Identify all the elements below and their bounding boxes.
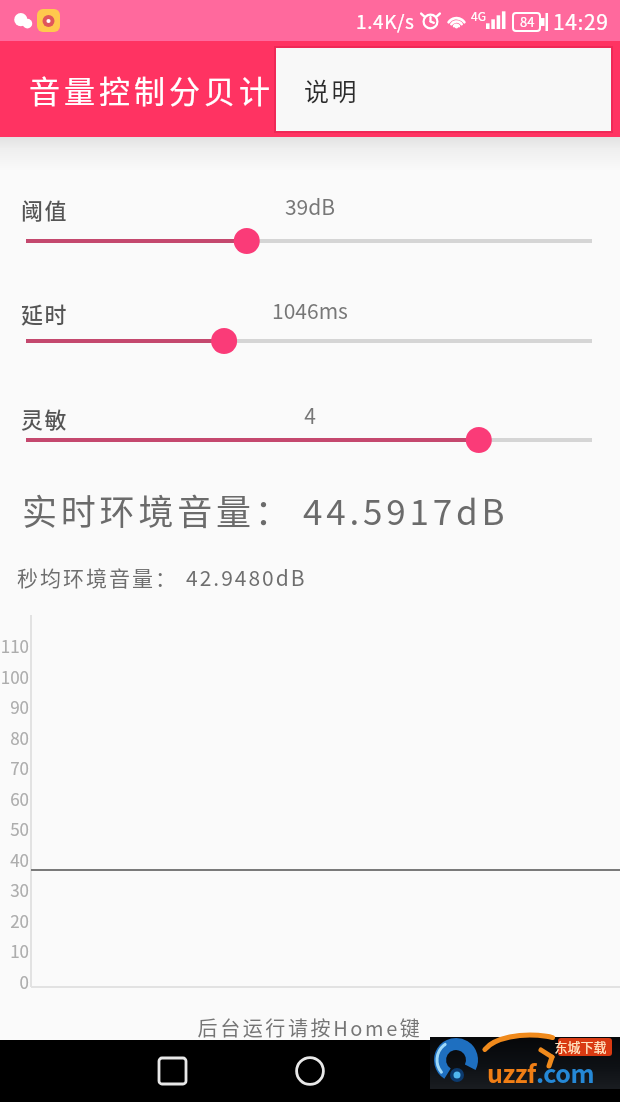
staticText: 110 [0, 633, 29, 658]
button[interactable] [0, 225, 620, 257]
staticText: 10 [0, 938, 29, 963]
staticText: 音量控制分贝计 [29, 67, 274, 112]
staticText: 90 [0, 694, 29, 719]
staticText: 42.9480dB [186, 562, 307, 592]
staticText: 东城下载 [554, 1037, 607, 1056]
staticText: 说明 [304, 72, 360, 108]
staticText: 14:29 [553, 6, 609, 36]
staticText: 实时环境音量： [22, 484, 294, 535]
staticText: 灵敏 [21, 402, 69, 434]
button[interactable]: Recent apps [149, 1047, 196, 1094]
staticText: 84 [520, 12, 535, 31]
staticText: 阈值 [21, 193, 69, 225]
staticText: 4G [471, 7, 486, 24]
staticText: .com [536, 1054, 595, 1090]
staticText: 50 [0, 816, 29, 841]
button[interactable]: 说明 [276, 48, 611, 131]
staticText: 延时 [21, 297, 69, 329]
staticText: 60 [0, 786, 29, 811]
staticText: 4 [0, 400, 620, 430]
button[interactable] [0, 424, 620, 456]
staticText: 秒均环境音量： [17, 562, 178, 592]
staticText: 后台运行请按Home键 [0, 1013, 620, 1042]
staticText: 70 [0, 755, 29, 780]
staticText: 30 [0, 877, 29, 902]
staticText: 100 [0, 664, 29, 689]
staticText: 1.4K/s [356, 7, 415, 35]
staticText: uzzf [487, 1054, 536, 1090]
staticText: 1046ms [0, 295, 620, 325]
staticText: 20 [0, 908, 29, 933]
button[interactable]: Home [286, 1047, 333, 1094]
staticText: 40 [0, 847, 29, 872]
button[interactable] [0, 325, 620, 357]
staticText: 44.5917dB [303, 484, 509, 535]
staticText: 0 [0, 969, 29, 994]
staticText: 80 [0, 725, 29, 750]
staticText: 39dB [0, 191, 620, 221]
